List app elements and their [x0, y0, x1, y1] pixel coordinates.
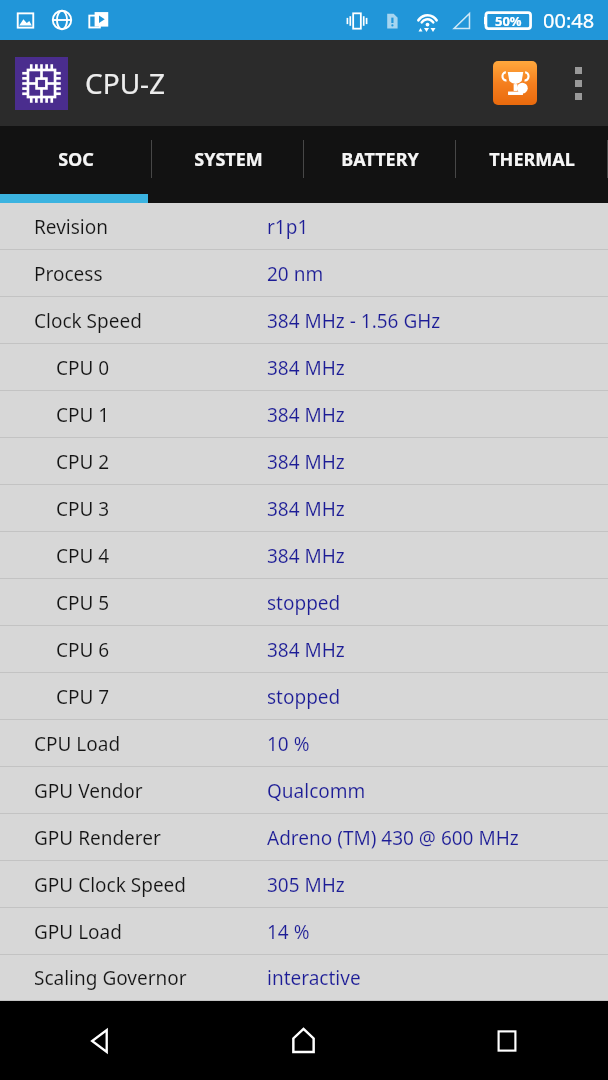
- staticText: 384 MHz: [267, 496, 345, 522]
- staticText: GPU Renderer: [34, 825, 161, 851]
- button[interactable]: SYSTEM: [152, 126, 304, 203]
- staticText: SOC: [58, 147, 94, 172]
- staticText: 384 MHz: [267, 402, 345, 428]
- staticText: 14 %: [267, 919, 310, 945]
- button[interactable]: SOC: [0, 126, 152, 203]
- staticText: Adreno (TM) 430 @ 600 MHz: [267, 825, 519, 851]
- button[interactable]: Recent apps: [405, 1001, 608, 1080]
- staticText: 00:48: [543, 7, 595, 34]
- button[interactable]: GPU Load: [0, 908, 608, 955]
- button[interactable]: CPU 7: [0, 673, 608, 720]
- staticText: stopped: [267, 684, 341, 710]
- staticText: CPU 6: [56, 637, 110, 663]
- button[interactable]: CPU 6: [0, 626, 608, 673]
- button[interactable]: THERMAL: [456, 126, 608, 203]
- staticText: 384 MHz: [267, 355, 345, 381]
- button[interactable]: BATTERY: [304, 126, 456, 203]
- staticText: interactive: [267, 965, 361, 991]
- button[interactable]: CPU 2: [0, 438, 608, 485]
- staticText: 384 MHz: [267, 543, 345, 569]
- staticText: CPU-Z: [85, 64, 166, 102]
- staticText: 384 MHz: [267, 449, 345, 475]
- staticText: CPU 0: [56, 355, 110, 381]
- staticText: 384 MHz - 1.56 GHz: [267, 308, 441, 334]
- button[interactable]: CPU 5: [0, 579, 608, 626]
- button[interactable]: CPU 0: [0, 344, 608, 391]
- button[interactable]: Process: [0, 250, 608, 297]
- staticText: CPU 5: [56, 590, 110, 616]
- staticText: CPU 1: [56, 402, 110, 428]
- staticText: 305 MHz: [267, 872, 345, 898]
- staticText: GPU Vendor: [34, 778, 143, 804]
- button[interactable]: GPU Clock Speed: [0, 861, 608, 908]
- button[interactable]: More options: [561, 56, 595, 110]
- staticText: CPU 2: [56, 449, 110, 475]
- button[interactable]: Scaling Governor: [0, 955, 608, 1001]
- staticText: Scaling Governor: [34, 965, 187, 991]
- button[interactable]: Back: [0, 1001, 202, 1080]
- button[interactable]: Benchmark ranking: [493, 61, 537, 105]
- staticText: 10 %: [267, 731, 310, 757]
- staticText: 384 MHz: [267, 637, 345, 663]
- button[interactable]: Home: [202, 1001, 405, 1080]
- staticText: THERMAL: [489, 147, 575, 172]
- button[interactable]: CPU Load: [0, 720, 608, 767]
- staticText: CPU Load: [34, 731, 121, 757]
- staticText: Qualcomm: [267, 778, 366, 804]
- staticText: CPU 4: [56, 543, 110, 569]
- staticText: CPU 3: [56, 496, 110, 522]
- button[interactable]: CPU 4: [0, 532, 608, 579]
- button[interactable]: Revision: [0, 203, 608, 250]
- staticText: Process: [34, 261, 103, 287]
- staticText: Revision: [34, 214, 108, 240]
- button[interactable]: CPU 1: [0, 391, 608, 438]
- button[interactable]: GPU Renderer: [0, 814, 608, 861]
- button[interactable]: CPU 3: [0, 485, 608, 532]
- staticText: GPU Clock Speed: [34, 872, 187, 898]
- staticText: GPU Load: [34, 919, 122, 945]
- staticText: 20 nm: [267, 261, 324, 287]
- staticText: CPU 7: [56, 684, 110, 710]
- button[interactable]: GPU Vendor: [0, 767, 608, 814]
- staticText: SYSTEM: [194, 147, 263, 172]
- staticText: stopped: [267, 590, 341, 616]
- staticText: Clock Speed: [34, 308, 142, 334]
- staticText: r1p1: [267, 214, 309, 240]
- staticText: 50%: [495, 12, 522, 30]
- button[interactable]: Clock Speed: [0, 297, 608, 344]
- staticText: BATTERY: [341, 147, 419, 172]
